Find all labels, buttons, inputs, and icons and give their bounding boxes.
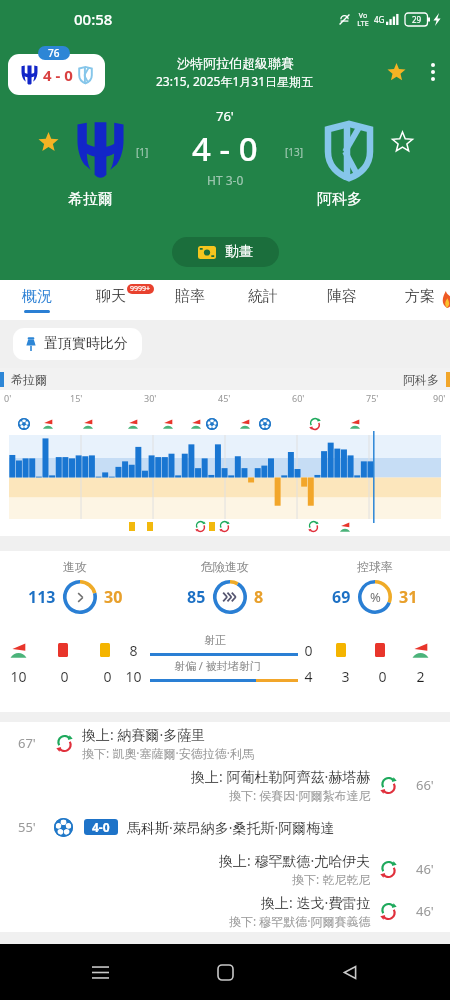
staticText: 10 [10, 667, 27, 686]
staticText: 55' [18, 818, 36, 836]
button[interactable]: Favourite away team [390, 130, 414, 154]
button[interactable]: 4 - 0 [8, 54, 105, 95]
staticText: 4 - 0 [192, 126, 258, 171]
staticText: 4-0 [92, 819, 110, 835]
staticText: HT 3-0 [207, 172, 244, 188]
staticText: 置頂實時比分 [44, 335, 128, 353]
staticText: 射正 [204, 633, 226, 647]
staticText: 賠率 [175, 287, 205, 306]
staticText: 60' [292, 392, 305, 404]
button[interactable]: Back [325, 947, 375, 997]
staticText: 4 [304, 667, 313, 686]
staticText: 8 [129, 641, 138, 660]
button[interactable]: 進攻 [0, 559, 150, 614]
staticText: 75' [366, 392, 379, 404]
staticText: 概況 [22, 287, 52, 306]
staticText: 0 [378, 667, 387, 686]
staticText: [13] [285, 145, 304, 159]
staticText: 換下: 乾尼乾尼 [292, 871, 371, 887]
staticText: 進攻 [63, 559, 87, 574]
button[interactable]: Recents [75, 947, 125, 997]
staticText: 聊天 [96, 287, 126, 306]
staticText: 90' [433, 392, 446, 404]
staticText: 23:15, 2025年1月31日星期五 [156, 73, 314, 89]
staticText: 0 [304, 641, 313, 660]
staticText: 動畫 [225, 243, 253, 261]
staticText: 2 [416, 667, 425, 686]
staticText: 0 [60, 667, 69, 686]
button[interactable]: 陣容 [314, 280, 370, 320]
staticText: 換上: 穆罕默德·尤哈伊夫 [219, 851, 371, 870]
staticText: 29 [412, 14, 422, 25]
staticText: 換上: 迭戈·費雷拉 [261, 893, 371, 912]
staticText: 113 [28, 586, 56, 608]
staticText: 換上: 阿葡杜勒阿齊茲·赫塔赫 [191, 767, 371, 786]
staticText: 射偏 / 被封堵射门 [174, 658, 261, 673]
button[interactable]: Favourite home team [36, 130, 60, 154]
staticText: 66' [416, 776, 434, 794]
staticText: 30' [144, 392, 157, 404]
button[interactable]: 危險進攻 [150, 559, 300, 614]
button[interactable]: 67' [0, 722, 450, 764]
staticText: 45' [218, 392, 231, 404]
staticText: 方案 [405, 287, 435, 306]
staticText: 8 [254, 586, 264, 608]
button[interactable]: 46' [0, 848, 450, 890]
staticText: 統計 [248, 287, 278, 306]
staticText: 換上: 納賽爾·多薩里 [82, 725, 206, 744]
staticText: 76' [216, 107, 234, 125]
button[interactable]: 方案 [392, 280, 448, 320]
staticText: 46' [416, 902, 434, 920]
button[interactable]: 55' [0, 806, 450, 848]
staticText: 3 [341, 667, 350, 686]
staticText: 76 [48, 46, 60, 60]
staticText: 0 [103, 667, 112, 686]
staticText: 換下: 侯賽因·阿爾紮布達尼 [229, 787, 371, 803]
button[interactable]: Favourite [376, 52, 416, 92]
button[interactable]: 46' [0, 890, 450, 932]
staticText: [1] [136, 145, 149, 159]
staticText: 00:58 [74, 9, 113, 29]
staticText: 4G [374, 14, 385, 25]
staticText: 31 [399, 586, 418, 608]
staticText: 控球率 [357, 559, 393, 574]
staticText: 0' [4, 392, 12, 404]
staticText: 阿科多 [403, 372, 439, 387]
staticText: 換下: 凱奧·塞薩爾·安德拉德·利馬 [82, 745, 254, 761]
staticText: 沙特阿拉伯超級聯賽 [177, 55, 294, 71]
staticText: 30 [104, 586, 123, 608]
button[interactable]: 控球率 [300, 559, 450, 614]
button[interactable]: 聊天 [83, 280, 139, 320]
button[interactable]: 66' [0, 764, 450, 806]
staticText: % [370, 588, 381, 606]
staticText: 馬科斯·萊昂納多·桑托斯·阿爾梅達 [127, 818, 335, 837]
button[interactable]: 置頂實時比分 [13, 328, 142, 360]
staticText: 陣容 [327, 287, 357, 306]
staticText: 4 - 0 [43, 65, 73, 85]
button[interactable]: 概況 [9, 280, 65, 320]
button[interactable]: 賠率 [162, 280, 218, 320]
staticText: 阿科多 [317, 190, 362, 209]
button[interactable]: Home [200, 947, 250, 997]
button[interactable]: 統計 [235, 280, 291, 320]
staticText: 15' [70, 392, 83, 404]
staticText: 換下: 穆罕默德·阿爾賽義德 [229, 913, 371, 929]
button[interactable]: 動畫 [172, 237, 279, 267]
staticText: 46' [416, 860, 434, 878]
staticText: 9999+ [130, 284, 151, 294]
button[interactable]: More options [416, 55, 450, 89]
staticText: 10 [125, 667, 142, 686]
staticText: 希拉爾 [68, 190, 113, 209]
staticText: 69 [332, 586, 351, 608]
staticText: 希拉爾 [11, 372, 47, 387]
staticText: 危險進攻 [201, 559, 249, 574]
staticText: Vo LTE [357, 11, 369, 28]
staticText: 85 [187, 586, 206, 608]
staticText: 67' [18, 734, 36, 752]
